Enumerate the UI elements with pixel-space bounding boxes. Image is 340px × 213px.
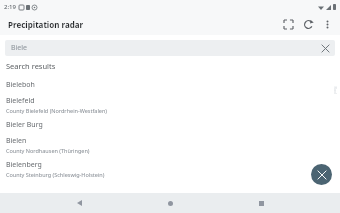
button[interactable]: Bielefeld xyxy=(0,91,340,115)
button[interactable]: Biele xyxy=(5,40,335,56)
staticText: 2:19 xyxy=(4,3,16,11)
button[interactable]: Bieler Burg xyxy=(0,115,340,131)
staticText: Bieler Burg xyxy=(6,120,43,130)
staticText: County Nordhausen (Thüringen) xyxy=(6,147,90,154)
staticText: Bielen xyxy=(6,136,27,146)
button[interactable]: Bielenberg xyxy=(0,155,340,179)
staticText: County Bielefeld (Nordrhein-Westfalen) xyxy=(6,107,108,114)
button[interactable]: Back xyxy=(67,193,91,213)
staticText: County Steinburg (Schleswig-Holstein) xyxy=(6,171,105,178)
button[interactable]: Clear search xyxy=(319,42,332,55)
staticText: Bieleboh xyxy=(6,80,35,90)
staticText: Search results xyxy=(6,61,56,71)
button[interactable]: Refresh xyxy=(298,14,318,34)
button[interactable]: Fullscreen xyxy=(278,14,298,34)
staticText: Bielefeld xyxy=(6,96,35,106)
staticText: Precipitation radar xyxy=(8,19,84,30)
button[interactable]: More options xyxy=(318,15,336,33)
button[interactable]: Bielen xyxy=(0,131,340,155)
staticText: Bielenberg xyxy=(6,160,42,170)
button[interactable]: Close xyxy=(311,164,332,185)
button[interactable]: Home xyxy=(158,193,182,213)
button[interactable]: Recents xyxy=(249,193,273,213)
button[interactable]: Bieleboh xyxy=(0,75,340,91)
staticText: Radar data: Deutscher Wetterdienst xyxy=(332,86,337,94)
staticText: Biele xyxy=(11,43,28,53)
